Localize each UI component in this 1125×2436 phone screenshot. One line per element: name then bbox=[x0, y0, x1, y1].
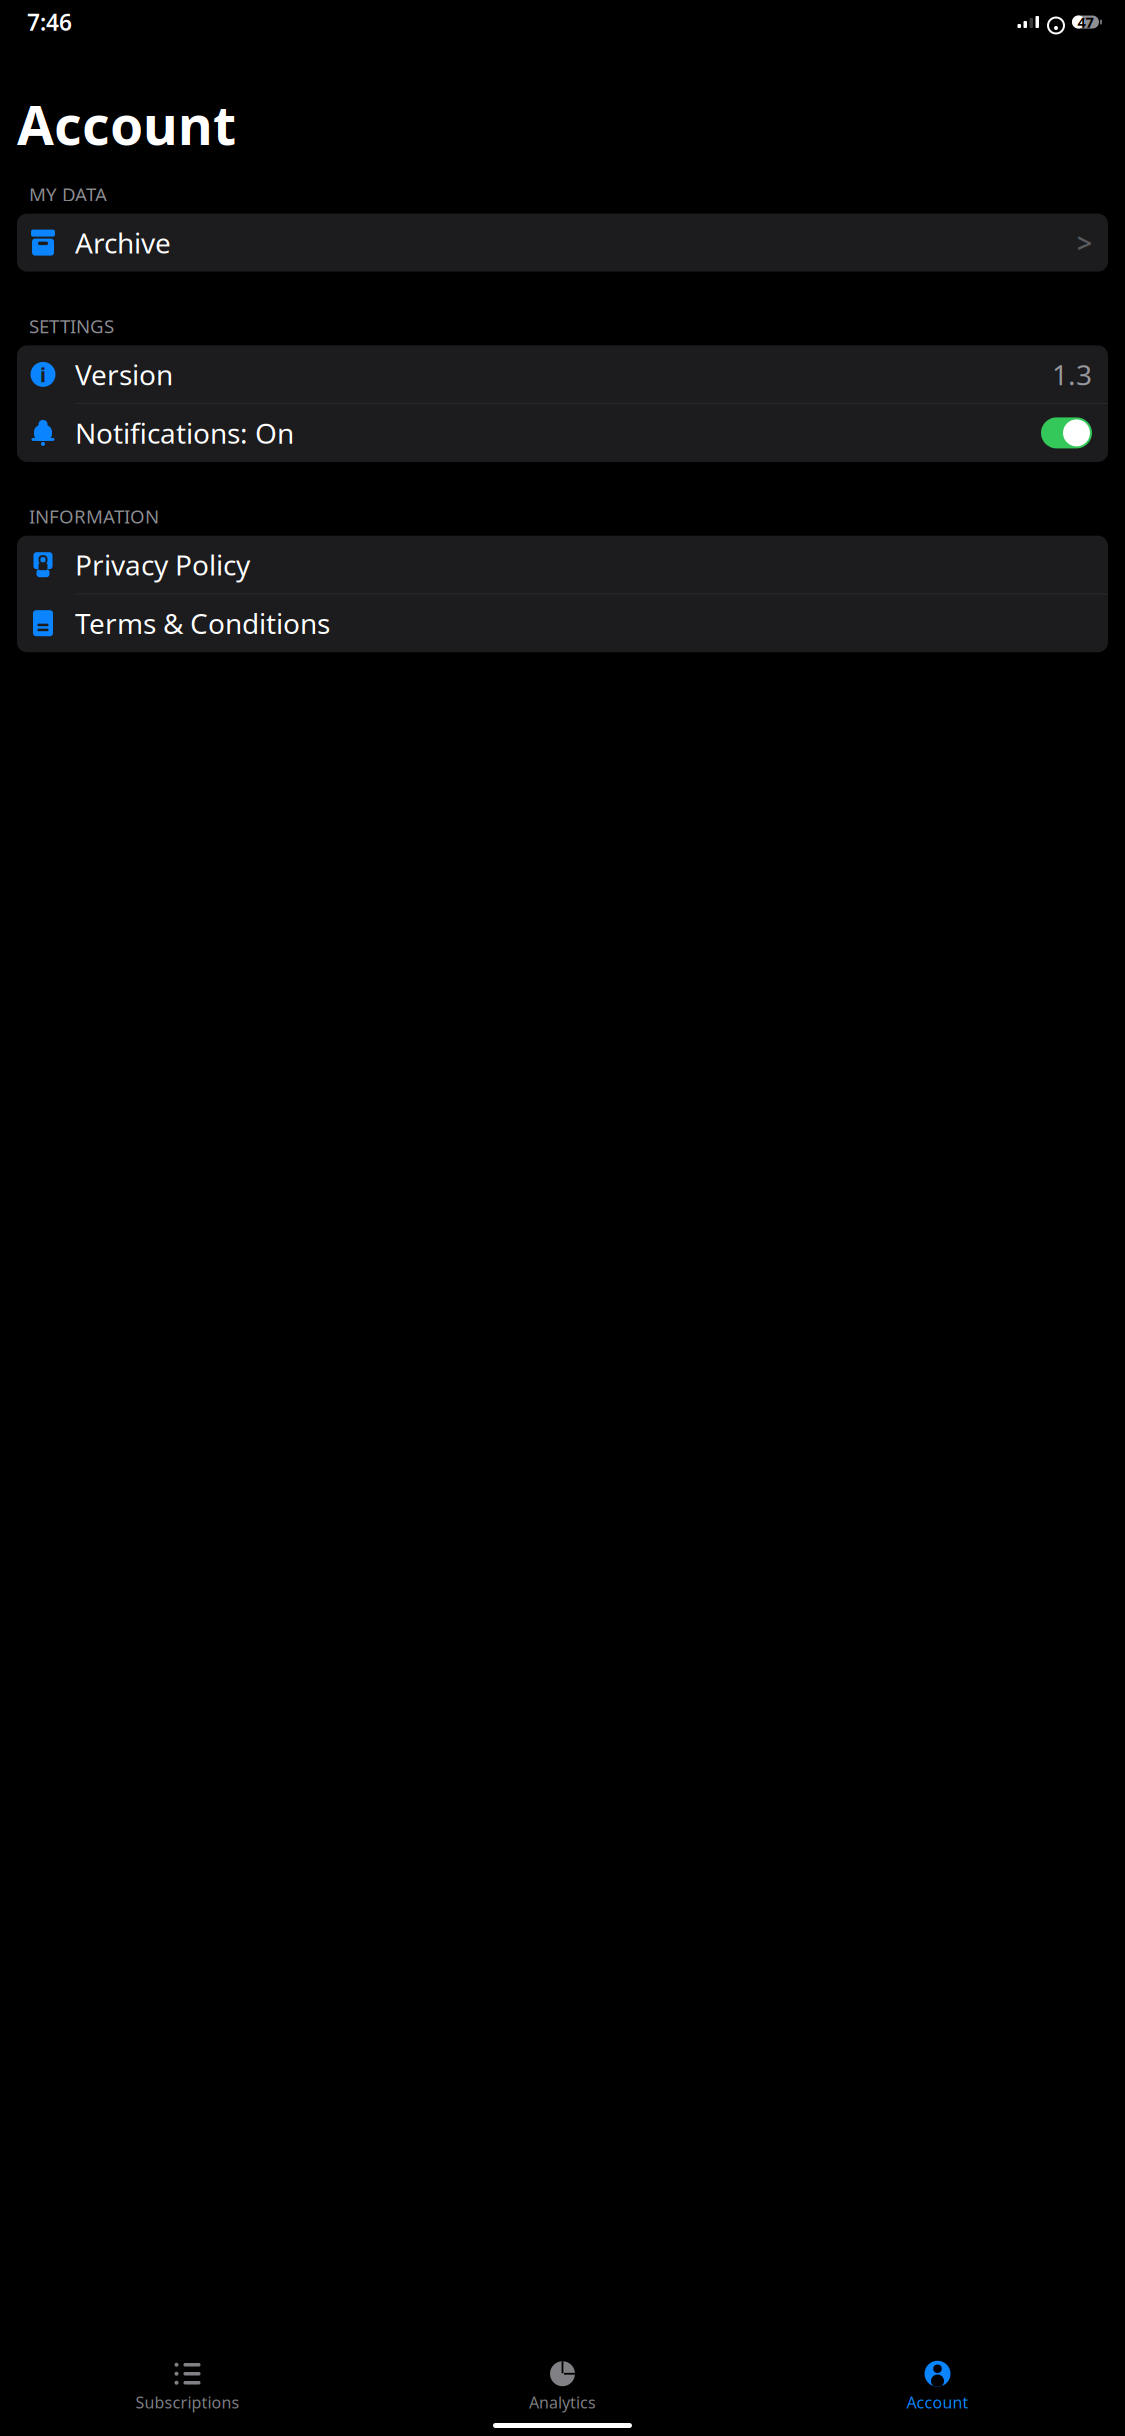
staticText: 7:46 bbox=[27, 7, 72, 37]
staticText: MY DATA bbox=[29, 182, 107, 207]
staticText: Privacy Policy bbox=[75, 546, 250, 583]
button[interactable]: Account bbox=[750, 2353, 1125, 2417]
button[interactable]: Archive bbox=[17, 214, 1108, 272]
button[interactable]: Subscriptions bbox=[0, 2353, 375, 2417]
staticText: Analytics bbox=[529, 2392, 596, 2413]
staticText: Subscriptions bbox=[135, 2392, 239, 2413]
staticText: 1.3 bbox=[1052, 356, 1092, 393]
staticText: Account bbox=[17, 89, 236, 160]
button[interactable]: Privacy Policy bbox=[17, 536, 1108, 594]
staticText: Version bbox=[75, 356, 173, 393]
button[interactable]: Analytics bbox=[375, 2353, 750, 2417]
staticText: i bbox=[40, 361, 46, 388]
staticText: Notifications: On bbox=[75, 414, 294, 451]
staticText: SETTINGS bbox=[29, 314, 114, 338]
staticText: Account bbox=[906, 2392, 968, 2413]
staticText: INFORMATION bbox=[29, 504, 159, 529]
staticText: > bbox=[1077, 225, 1092, 260]
button[interactable]: Notifications: On bbox=[17, 404, 1108, 462]
staticText: Archive bbox=[75, 224, 171, 261]
staticText: Terms & Conditions bbox=[75, 605, 330, 642]
button[interactable]: Terms & Conditions bbox=[17, 594, 1108, 652]
staticText: 47 bbox=[1077, 12, 1093, 32]
